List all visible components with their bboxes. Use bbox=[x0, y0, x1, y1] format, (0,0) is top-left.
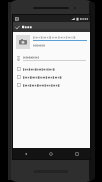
button[interactable]: Add photo bbox=[16, 35, 30, 49]
other: Toggle option bbox=[17, 67, 21, 71]
button[interactable]: Toggle option bbox=[13, 67, 90, 71]
button[interactable]: Toggle option bbox=[13, 83, 90, 87]
button[interactable]: Home bbox=[38, 148, 64, 159]
button[interactable]: Done bbox=[13, 22, 33, 32]
button[interactable]: Back bbox=[13, 148, 38, 159]
other: Quantity bbox=[17, 56, 20, 61]
button[interactable]: Quantity bbox=[17, 56, 86, 61]
button[interactable]: Recent apps bbox=[64, 148, 90, 159]
other: Done bbox=[15, 25, 20, 30]
button[interactable]: Toggle option bbox=[13, 75, 90, 79]
other: Toggle option bbox=[17, 83, 21, 87]
other: Toggle option bbox=[17, 75, 21, 79]
